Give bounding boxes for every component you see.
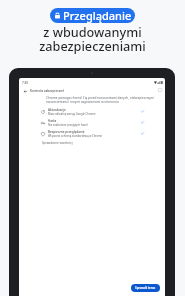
staticText: Masz aktualną wersję Google Chrome [48,112,96,116]
staticText: Przeglądanie [63,8,132,23]
button[interactable]: Wstecz [22,88,28,94]
staticText: Sprawdź teraz [135,286,156,290]
button[interactable]: Przeglądanie [50,8,135,23]
staticText: 7:30 [22,81,28,85]
staticText: Sprawdzone wcześniej [42,141,73,145]
staticText: Bezpieczne przeglądanie [48,130,85,134]
button[interactable]: Bezpieczne przeglądanie [19,128,165,139]
staticText: Chrome pomaga chronić Cię przed naruszen… [46,96,154,104]
staticText: Aktualizacje [48,108,66,112]
button[interactable]: Aktualizacje [19,106,165,117]
button[interactable]: Hasła [19,117,165,128]
button[interactable]: Pomoc [157,87,162,92]
button[interactable]: Sprawdź teraz [131,284,160,292]
staticText: Włączono ochronę standardową w Chrome [48,134,103,138]
staticText: Kontrola zabezpieczeń [30,89,65,93]
staticText: z wbudowanymi zabezpieczeniami [39,23,146,55]
staticText: Hasła [48,119,57,123]
staticText: Nie znaleziono przejętych haseł [48,123,88,127]
